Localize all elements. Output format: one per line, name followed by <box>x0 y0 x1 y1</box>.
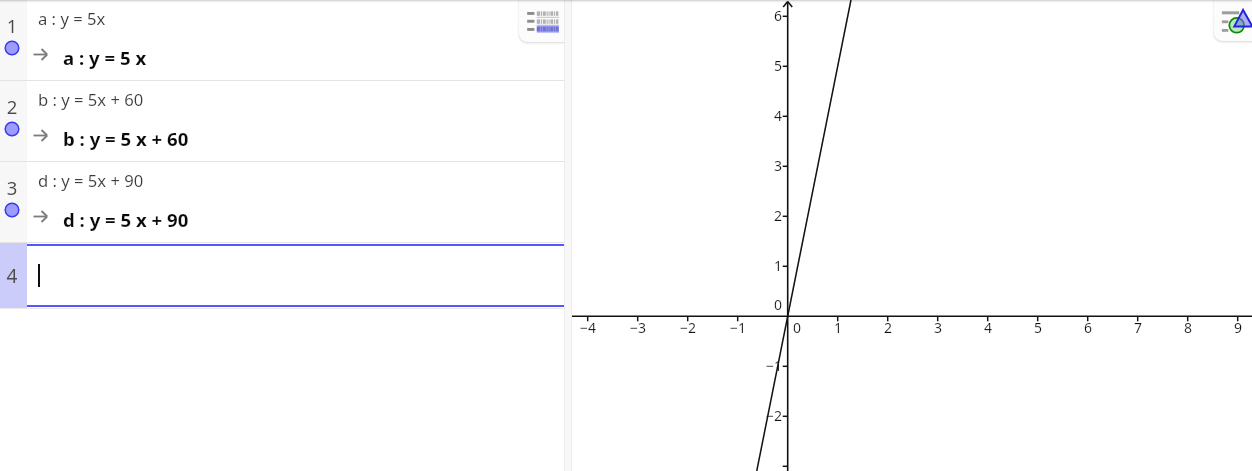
staticText: 3 <box>5 175 19 200</box>
staticText: 4 <box>968 318 1008 337</box>
staticText: 2 <box>5 94 19 119</box>
staticText: 1 <box>5 13 19 38</box>
staticText: 0 <box>777 318 817 337</box>
staticText: b : y = 5x + 60 <box>38 88 144 111</box>
staticText: 3 <box>918 318 958 337</box>
staticText: 2 <box>742 206 782 225</box>
staticText: 5 <box>742 56 782 75</box>
button[interactable]: 3 <box>0 162 564 243</box>
staticText: 1 <box>742 256 782 275</box>
staticText: −1 <box>742 356 782 375</box>
staticText: a : y = 5x <box>38 7 106 30</box>
staticText: d : y = 5 x + 90 <box>63 207 189 232</box>
staticText: 3 <box>742 156 782 175</box>
staticText: −4 <box>568 318 608 337</box>
staticText: 6 <box>742 6 782 25</box>
button[interactable]: Algebra view <box>519 0 565 42</box>
staticText: 2 <box>868 318 908 337</box>
staticText: 4 <box>5 263 19 289</box>
staticText: −3 <box>618 318 658 337</box>
staticText: 5 <box>1018 318 1058 337</box>
staticText: 6 <box>1068 318 1108 337</box>
staticText: −2 <box>742 406 782 425</box>
staticText: 1 <box>818 318 858 337</box>
staticText: a : y = 5 x <box>63 45 147 70</box>
staticText: −2 <box>668 318 708 337</box>
staticText: d : y = 5x + 90 <box>38 169 144 192</box>
staticText: −1 <box>718 318 758 337</box>
staticText: 8 <box>1168 318 1208 337</box>
button[interactable]: 2 <box>0 81 564 162</box>
staticText: b : y = 5 x + 60 <box>63 126 189 151</box>
staticText: 4 <box>742 106 782 125</box>
staticText: 7 <box>1118 318 1158 337</box>
staticText: 9 <box>1218 318 1252 337</box>
button[interactable]: Graphics view <box>1214 0 1252 41</box>
button[interactable]: Graphics view canvas <box>572 0 1252 471</box>
staticText: 0 <box>742 295 782 314</box>
button[interactable]: 4 <box>0 243 564 309</box>
button[interactable]: 1 <box>0 0 564 81</box>
